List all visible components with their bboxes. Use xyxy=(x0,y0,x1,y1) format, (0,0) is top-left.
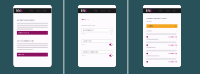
button[interactable]: Minerals xyxy=(13,5,51,67)
staticText: Supply chain xyxy=(82,40,91,42)
staticText: ACTIVITY xyxy=(146,21,152,22)
button[interactable]: Toggle filter xyxy=(78,5,116,67)
staticText: Extractive Industries xyxy=(17,40,34,42)
staticText: Data xyxy=(172,10,175,12)
staticText: > xyxy=(46,32,47,34)
button[interactable]: See full profile xyxy=(143,5,181,13)
staticText: Garment and Footwear xyxy=(17,19,35,21)
staticText: See full profile xyxy=(168,36,177,38)
staticText: BUSINESS RELATION xyxy=(81,24,95,26)
staticText: Home xyxy=(29,10,33,12)
staticText: About xyxy=(165,10,169,12)
staticText: Data xyxy=(43,10,46,12)
staticText: ble xyxy=(146,9,151,12)
staticText: See full profile xyxy=(168,61,177,63)
staticText: Cotton products xyxy=(18,32,29,34)
staticText: Data xyxy=(107,10,110,12)
staticText: Mining xyxy=(149,25,153,27)
staticText: Filters xyxy=(81,19,86,20)
staticText: Business relationships xyxy=(82,51,98,53)
button[interactable]: + xyxy=(143,5,181,67)
staticText: See full profile xyxy=(168,44,177,46)
staticText: Direct employed xyxy=(82,29,93,31)
staticText: About xyxy=(100,10,104,12)
staticText: ble xyxy=(16,9,21,12)
button[interactable]: Supply chain xyxy=(78,5,116,67)
button[interactable]: See full profile xyxy=(143,5,181,13)
staticText: ble xyxy=(81,9,86,12)
button[interactable]: Direct employed xyxy=(78,5,116,67)
staticText: Select the companies you want xyxy=(146,17,166,19)
staticText: Home xyxy=(158,10,162,12)
button[interactable]: See full profile xyxy=(143,5,181,13)
staticText: Home xyxy=(93,10,97,12)
button[interactable]: Toggle filter xyxy=(78,5,116,67)
staticText: Minerals xyxy=(18,54,24,55)
button[interactable]: Business relationships xyxy=(78,5,116,67)
staticText: > xyxy=(46,54,47,55)
button[interactable]: Cotton products xyxy=(13,5,51,67)
staticText: See full profile xyxy=(168,53,177,54)
button[interactable]: See full profile xyxy=(143,5,181,13)
staticText: About xyxy=(36,10,40,12)
